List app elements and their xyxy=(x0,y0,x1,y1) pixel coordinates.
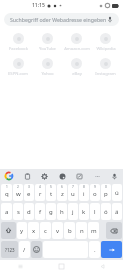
staticText: p xyxy=(104,190,108,198)
button[interactable]: Shift xyxy=(1,222,16,239)
staticText: 6 xyxy=(61,185,63,189)
staticText: o xyxy=(93,190,97,198)
staticText: c xyxy=(44,227,47,235)
staticText: z xyxy=(61,190,64,198)
button[interactable]: n xyxy=(76,222,87,239)
button[interactable]: Settings xyxy=(38,170,50,182)
staticText: eBay xyxy=(72,71,82,77)
staticText: Suchbegriff oder Webadresse eingeben xyxy=(10,16,107,23)
staticText: g xyxy=(49,208,53,216)
staticText: h xyxy=(60,208,64,216)
button[interactable]: ESPN.com xyxy=(3,56,33,79)
button[interactable]: x xyxy=(28,222,39,239)
staticText: y xyxy=(20,227,24,235)
staticText: 5 xyxy=(50,185,52,189)
button[interactable]: Go xyxy=(101,241,122,258)
button[interactable]: eBay xyxy=(62,56,91,79)
button[interactable]: 2 xyxy=(13,184,23,201)
staticText: x xyxy=(32,227,36,235)
staticText: m xyxy=(91,227,97,235)
staticText: 11:15 xyxy=(32,2,45,9)
button[interactable]: f xyxy=(35,203,45,220)
button[interactable]: Instagram xyxy=(91,56,120,79)
button[interactable]: m xyxy=(88,222,99,239)
button[interactable]: y xyxy=(17,222,27,239)
button[interactable]: l xyxy=(90,203,100,220)
button[interactable]: v xyxy=(52,222,63,239)
button[interactable]: 4 xyxy=(35,184,45,201)
button[interactable]: ?123 xyxy=(1,241,18,258)
staticText: 7 xyxy=(72,185,74,189)
staticText: ü xyxy=(115,189,119,197)
button[interactable]: 7 xyxy=(68,184,78,201)
staticText: 1 xyxy=(6,185,8,189)
button[interactable]: Home xyxy=(41,260,82,272)
button[interactable]: j xyxy=(68,203,78,220)
button[interactable]: . xyxy=(89,241,100,258)
button[interactable]: 1 xyxy=(1,184,12,201)
button[interactable]: c xyxy=(40,222,51,239)
button[interactable]: 5 xyxy=(46,184,56,201)
button[interactable]: YouTube xyxy=(33,31,62,54)
button[interactable]: Suchbegriff oder Webadresse eingeben xyxy=(4,13,119,26)
button[interactable]: g xyxy=(46,203,56,220)
staticText: Yahoo xyxy=(41,71,54,77)
button[interactable]: a xyxy=(1,203,12,220)
staticText: ä xyxy=(115,208,119,216)
button[interactable]: ö xyxy=(101,203,111,220)
staticText: l xyxy=(94,208,96,216)
staticText: j xyxy=(72,208,74,216)
button[interactable]: 8 xyxy=(79,184,89,201)
button[interactable]: More xyxy=(91,170,103,182)
staticText: b xyxy=(68,227,72,235)
staticText: n xyxy=(80,227,84,235)
staticText: k xyxy=(82,208,86,216)
staticText: 8 xyxy=(83,185,85,189)
button[interactable]: s xyxy=(13,203,23,220)
button[interactable]: / xyxy=(19,241,30,258)
button[interactable]: b xyxy=(64,222,75,239)
button[interactable]: Stickers xyxy=(56,170,68,182)
staticText: e xyxy=(27,190,31,198)
staticText: Wikipedia xyxy=(96,46,116,52)
button[interactable]: 0 xyxy=(101,184,111,201)
button[interactable]: k xyxy=(79,203,89,220)
staticText: v xyxy=(56,227,60,235)
button[interactable]: Clipboard xyxy=(21,170,33,182)
staticText: Instagram xyxy=(95,71,116,77)
button[interactable]: Wikipedia xyxy=(91,31,120,54)
staticText: a xyxy=(5,208,9,216)
staticText: f xyxy=(39,208,42,216)
staticText: u xyxy=(71,190,75,198)
button[interactable]: Emoji xyxy=(31,241,42,258)
button[interactable]: d xyxy=(24,203,34,220)
button[interactable]: Translate xyxy=(73,170,85,182)
staticText: YouTube xyxy=(39,46,56,52)
staticText: Facebook xyxy=(9,46,28,52)
staticText: q xyxy=(5,190,9,198)
staticText: ESPN.com xyxy=(8,71,28,77)
button[interactable]: Voice search xyxy=(107,15,113,24)
button[interactable]: Google xyxy=(3,170,15,182)
button[interactable]: ä xyxy=(112,203,122,220)
button[interactable]: ü xyxy=(112,184,122,201)
staticText: . xyxy=(94,246,96,254)
button[interactable]: Facebook xyxy=(3,31,33,54)
staticText: ö xyxy=(104,208,108,216)
button[interactable]: 9 xyxy=(90,184,100,201)
staticText: 0 xyxy=(105,185,107,189)
staticText: w xyxy=(16,190,21,198)
button[interactable]: Backspace xyxy=(106,222,122,239)
button[interactable]: Amazon.com xyxy=(62,31,91,54)
button[interactable]: 3 xyxy=(24,184,34,201)
staticText: 9 xyxy=(94,185,96,189)
staticText: ?123 xyxy=(5,247,15,253)
button[interactable]: h xyxy=(57,203,67,220)
button[interactable]: 6 xyxy=(57,184,67,201)
button[interactable]: Yahoo xyxy=(33,56,62,79)
staticText: t xyxy=(50,190,53,198)
button[interactable]: Voice input xyxy=(108,170,120,182)
